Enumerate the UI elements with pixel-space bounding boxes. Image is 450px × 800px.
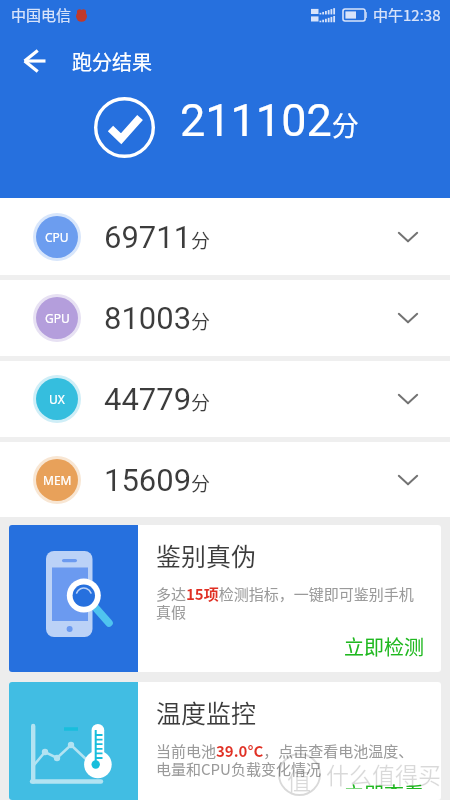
button[interactable]: UX bbox=[0, 361, 450, 437]
staticText: 跑分结果 bbox=[72, 47, 152, 76]
staticText: 当前电池39.0°C，点击查看电池温度、电量和CPU负载变化情况 bbox=[156, 740, 424, 779]
button[interactable]: CPU bbox=[0, 198, 450, 275]
staticText: 多达15项检测指标，一键即可鉴别手机真假 bbox=[156, 583, 424, 622]
staticText: 中国电信 bbox=[11, 4, 72, 26]
button[interactable]: 温度监控 bbox=[9, 682, 441, 800]
staticText: 值 bbox=[287, 762, 311, 797]
staticText: 温度监控 bbox=[156, 694, 257, 730]
staticText: 69711分 bbox=[104, 219, 211, 255]
staticText: 81003分 bbox=[104, 300, 211, 336]
staticText: 立即检测 bbox=[156, 632, 424, 661]
button[interactable]: 鉴别真伪 bbox=[9, 525, 441, 672]
staticText: 44779分 bbox=[104, 381, 211, 417]
staticText: 211102分 bbox=[180, 94, 359, 147]
button[interactable]: MEM bbox=[0, 442, 450, 517]
staticText: CPU bbox=[45, 229, 69, 245]
button[interactable]: Back bbox=[14, 41, 54, 81]
staticText: 中午12:38 bbox=[373, 4, 441, 26]
staticText: MEM bbox=[43, 472, 72, 488]
staticText: 什么值得买 bbox=[326, 757, 441, 790]
staticText: 15609分 bbox=[104, 462, 211, 498]
button[interactable]: GPU bbox=[0, 280, 450, 356]
staticText: 鉴别真伪 bbox=[156, 537, 257, 573]
staticText: 立即查看 bbox=[156, 779, 424, 789]
staticText: GPU bbox=[45, 310, 70, 326]
staticText: UX bbox=[49, 391, 65, 407]
